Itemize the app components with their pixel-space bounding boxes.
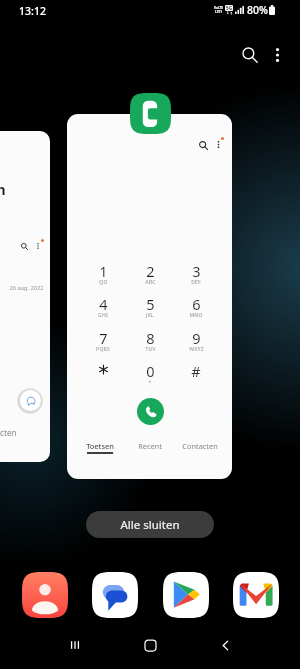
button[interactable]: Recent <box>124 441 176 463</box>
button[interactable]: 9 <box>174 328 218 358</box>
staticText: 4 <box>99 294 108 314</box>
button[interactable]: Contacts <box>22 572 68 618</box>
button[interactable]: Phone app <box>130 93 171 134</box>
staticText: 2 <box>146 261 155 281</box>
button[interactable]: Toetsen <box>74 441 126 463</box>
button[interactable]: Messages <box>92 572 138 618</box>
button[interactable]: New message <box>20 390 41 411</box>
button[interactable]: Contacten <box>174 441 226 463</box>
button[interactable]: More options <box>262 40 292 70</box>
staticText: DEF <box>191 279 201 286</box>
staticText: 1 <box>99 261 108 281</box>
button[interactable]: Call <box>137 398 164 425</box>
staticText: WXYZ <box>189 346 204 353</box>
staticText: GHI <box>98 312 108 319</box>
staticText: + <box>148 379 152 386</box>
staticText: 3 <box>192 261 201 281</box>
button[interactable]: 3 <box>174 261 218 291</box>
staticText: QO <box>99 279 108 286</box>
button[interactable]: Play Store <box>163 572 209 618</box>
staticText: VoLTE <box>214 6 223 10</box>
staticText: ABC <box>145 279 156 286</box>
staticText: Recent <box>138 441 162 451</box>
button[interactable]: Home <box>130 631 170 659</box>
staticText: Alle sluiten <box>120 517 180 533</box>
button[interactable]: 2 <box>128 261 172 291</box>
staticText: 5 <box>146 294 155 314</box>
staticText: 9 <box>192 328 201 348</box>
button[interactable]: 7 <box>81 328 125 358</box>
staticText: 6 <box>192 294 201 314</box>
button[interactable]: 0 <box>128 361 172 391</box>
staticText: JKL <box>146 312 154 319</box>
staticText: 80% <box>247 3 268 17</box>
staticText: 13:12 <box>19 4 46 18</box>
staticText: 5G <box>226 5 232 11</box>
button[interactable]: Back <box>205 631 245 659</box>
button[interactable]: 8 <box>128 328 172 358</box>
staticText: 0 <box>146 361 155 381</box>
staticText: Contacten <box>0 427 17 438</box>
button[interactable]: Recents <box>55 631 95 659</box>
button[interactable] <box>81 361 125 391</box>
staticText: LTE1 <box>215 10 222 14</box>
button[interactable]: Alle sluiten <box>86 511 214 538</box>
staticText: PQRS <box>96 346 110 353</box>
button[interactable]: 1 <box>67 114 232 479</box>
button[interactable]: 4 <box>81 294 125 324</box>
button[interactable]: 5 <box>128 294 172 324</box>
button[interactable]: 6 <box>174 294 218 324</box>
staticText: 26 aug. 2022 <box>9 284 44 292</box>
staticText: MNO <box>189 312 203 319</box>
staticText: 7 <box>99 328 108 348</box>
staticText: 8 <box>146 328 155 348</box>
staticText: TUV <box>145 346 156 353</box>
button[interactable]: # <box>174 361 218 391</box>
button[interactable]: Gmail <box>233 572 279 618</box>
staticText: Contacten <box>182 441 218 451</box>
button[interactable]: Search <box>235 40 265 70</box>
button[interactable]: Telefoon <box>0 131 50 462</box>
staticText: Telefoon <box>0 179 6 199</box>
staticText: # <box>191 361 201 381</box>
staticText: Toetsen <box>86 441 114 451</box>
button[interactable]: 1 <box>81 261 125 291</box>
